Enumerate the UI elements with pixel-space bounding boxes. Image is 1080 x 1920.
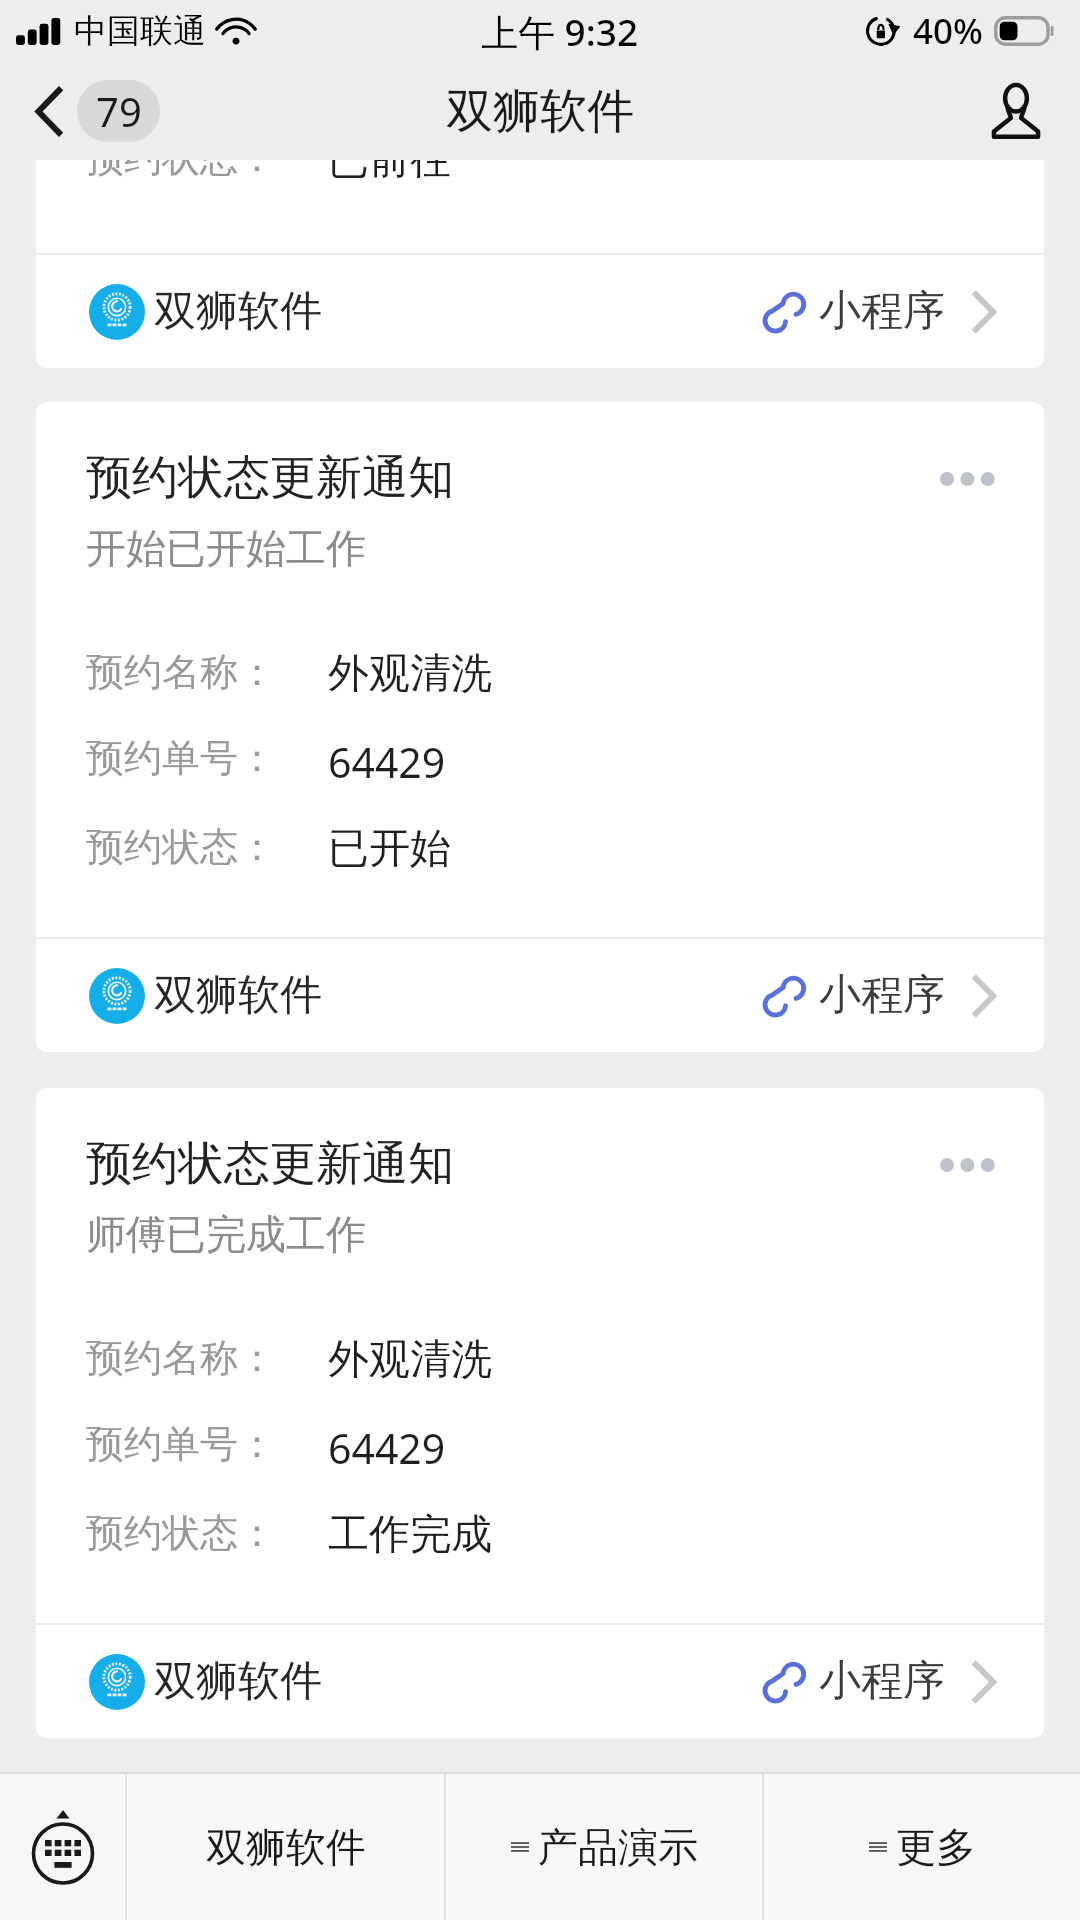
staticText: 预约名称：	[86, 1334, 276, 1382]
staticText: 更多	[896, 1822, 976, 1872]
staticText: 开始已开始工作	[86, 523, 366, 573]
staticText: 预约状态更新通知	[86, 1135, 454, 1193]
staticText: 预约状态更新通知	[86, 449, 454, 507]
button[interactable]: 产品演示	[446, 1774, 762, 1920]
staticText: 小程序	[819, 969, 945, 1022]
staticText: 40%	[913, 7, 983, 55]
staticText: 64429	[328, 1420, 446, 1476]
button[interactable]: 双狮软件	[36, 255, 1044, 368]
staticText: 79	[96, 84, 142, 138]
staticText: 双狮软件	[154, 969, 322, 1022]
button[interactable]: 双狮软件	[36, 1625, 1044, 1738]
button[interactable]: Keyboard	[0, 1774, 125, 1920]
staticText: 已前往	[328, 160, 451, 178]
button[interactable]: Back	[36, 80, 168, 142]
staticText: 上午 9:32	[481, 6, 639, 57]
button[interactable]: 预约状态更新通知	[36, 1088, 1044, 1738]
staticText: 小程序	[819, 1655, 945, 1708]
staticText: 中国联通	[74, 10, 206, 52]
staticText: 预约状态：	[86, 1509, 276, 1557]
button[interactable]: 预约状态更新通知	[36, 402, 1044, 1052]
staticText: 双狮软件	[206, 1822, 366, 1872]
staticText: 预约单号：	[86, 1420, 276, 1468]
staticText: 预约名称：	[86, 648, 276, 696]
staticText: 小程序	[819, 285, 945, 338]
staticText: 双狮软件	[154, 285, 322, 338]
staticText: 外观清洗	[328, 1334, 492, 1386]
button[interactable]: 预约状态：	[36, 160, 1044, 368]
staticText: 预约状态：	[86, 823, 276, 871]
staticText: 预约状态：	[86, 160, 276, 178]
staticText: 已开始	[328, 823, 451, 875]
button[interactable]: 双狮软件	[127, 1774, 444, 1920]
button[interactable]: Contact	[976, 71, 1056, 151]
staticText: 预约单号：	[86, 734, 276, 782]
staticText: 双狮软件	[154, 1655, 322, 1708]
button[interactable]: 更多	[764, 1774, 1080, 1920]
staticText: 产品演示	[538, 1822, 698, 1872]
staticText: 师傅已完成工作	[86, 1209, 366, 1259]
staticText: 64429	[328, 734, 446, 790]
staticText: 外观清洗	[328, 648, 492, 700]
button[interactable]: 双狮软件	[36, 939, 1044, 1052]
staticText: 双狮软件	[446, 82, 634, 141]
staticText: 工作完成	[328, 1509, 492, 1561]
